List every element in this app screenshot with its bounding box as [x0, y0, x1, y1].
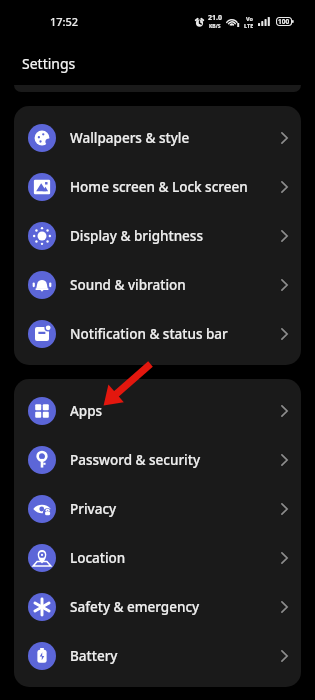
- staticText: Vo: [246, 15, 253, 22]
- button[interactable]: Safety & emergency: [14, 582, 301, 631]
- staticText: Location: [70, 549, 126, 567]
- button[interactable]: Notification & status bar: [14, 309, 301, 358]
- staticText: Home screen & Lock screen: [70, 178, 248, 196]
- button[interactable]: Display & brightness: [14, 211, 301, 260]
- staticText: Settings: [22, 54, 76, 73]
- staticText: Display & brightness: [70, 227, 203, 245]
- button[interactable]: Privacy: [14, 484, 301, 533]
- staticText: Safety & emergency: [70, 598, 200, 616]
- staticText: Notification & status bar: [70, 325, 228, 343]
- button[interactable]: Wallpapers & style: [14, 113, 301, 162]
- staticText: 100: [278, 17, 290, 26]
- button[interactable]: Sound & vibration: [14, 260, 301, 309]
- button[interactable]: Apps: [14, 386, 301, 435]
- button[interactable]: Home screen & Lock screen: [14, 162, 301, 211]
- button[interactable]: Password & security: [14, 435, 301, 484]
- button[interactable]: Location: [14, 533, 301, 582]
- staticText: Apps: [70, 402, 103, 420]
- staticText: Password & security: [70, 451, 201, 469]
- staticText: Wallpapers & style: [70, 129, 190, 147]
- staticText: Privacy: [70, 500, 117, 518]
- staticText: 17:52: [50, 14, 79, 29]
- staticText: Battery: [70, 647, 118, 665]
- staticText: Sound & vibration: [70, 276, 186, 294]
- staticText: LTE: [244, 22, 254, 29]
- button[interactable]: Battery: [14, 631, 301, 680]
- staticText: KB/S: [209, 23, 221, 30]
- staticText: 21.0: [208, 13, 222, 23]
